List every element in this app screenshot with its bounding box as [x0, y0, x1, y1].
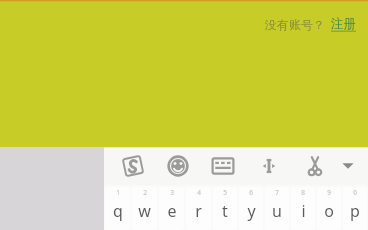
staticText: 0	[353, 188, 357, 197]
button[interactable]: Emoji	[161, 149, 195, 183]
button[interactable]: 6	[239, 187, 263, 230]
button[interactable]: 2	[132, 187, 157, 230]
staticText: 没有账号？	[265, 17, 325, 32]
staticText: 注册	[331, 16, 356, 32]
staticText: 5	[223, 188, 227, 197]
staticText: o	[324, 200, 334, 222]
button[interactable]: 0	[343, 187, 367, 230]
button[interactable]: Cut	[298, 149, 332, 183]
button[interactable]: 8	[291, 187, 315, 230]
staticText: 7	[275, 188, 279, 197]
staticText: r	[195, 200, 202, 222]
staticText: w	[138, 200, 151, 222]
staticText: p	[350, 200, 360, 222]
staticText: i	[301, 200, 306, 222]
staticText: 3	[170, 188, 174, 197]
staticText: u	[272, 200, 282, 222]
staticText: 8	[301, 188, 305, 197]
button[interactable]: Sogou input method	[116, 149, 150, 183]
staticText: e	[167, 200, 177, 222]
staticText: 4	[197, 188, 201, 197]
staticText: t	[222, 200, 228, 222]
staticText: 6	[249, 188, 253, 197]
button[interactable]: 5	[213, 187, 237, 230]
button[interactable]: 7	[265, 187, 289, 230]
button[interactable]: 4	[186, 187, 211, 230]
button[interactable]: More	[336, 149, 360, 183]
staticText: 9	[327, 188, 331, 197]
staticText: y	[247, 200, 256, 222]
staticText: q	[113, 200, 123, 222]
button[interactable]: 3	[159, 187, 184, 230]
button[interactable]: Keyboard layout	[206, 149, 240, 183]
button[interactable]: Move cursor	[252, 149, 286, 183]
staticText: 2	[143, 188, 147, 197]
button[interactable]: 1	[105, 187, 130, 230]
staticText: 1	[116, 188, 120, 197]
button[interactable]: 注册	[329, 14, 358, 34]
button[interactable]: 9	[317, 187, 341, 230]
